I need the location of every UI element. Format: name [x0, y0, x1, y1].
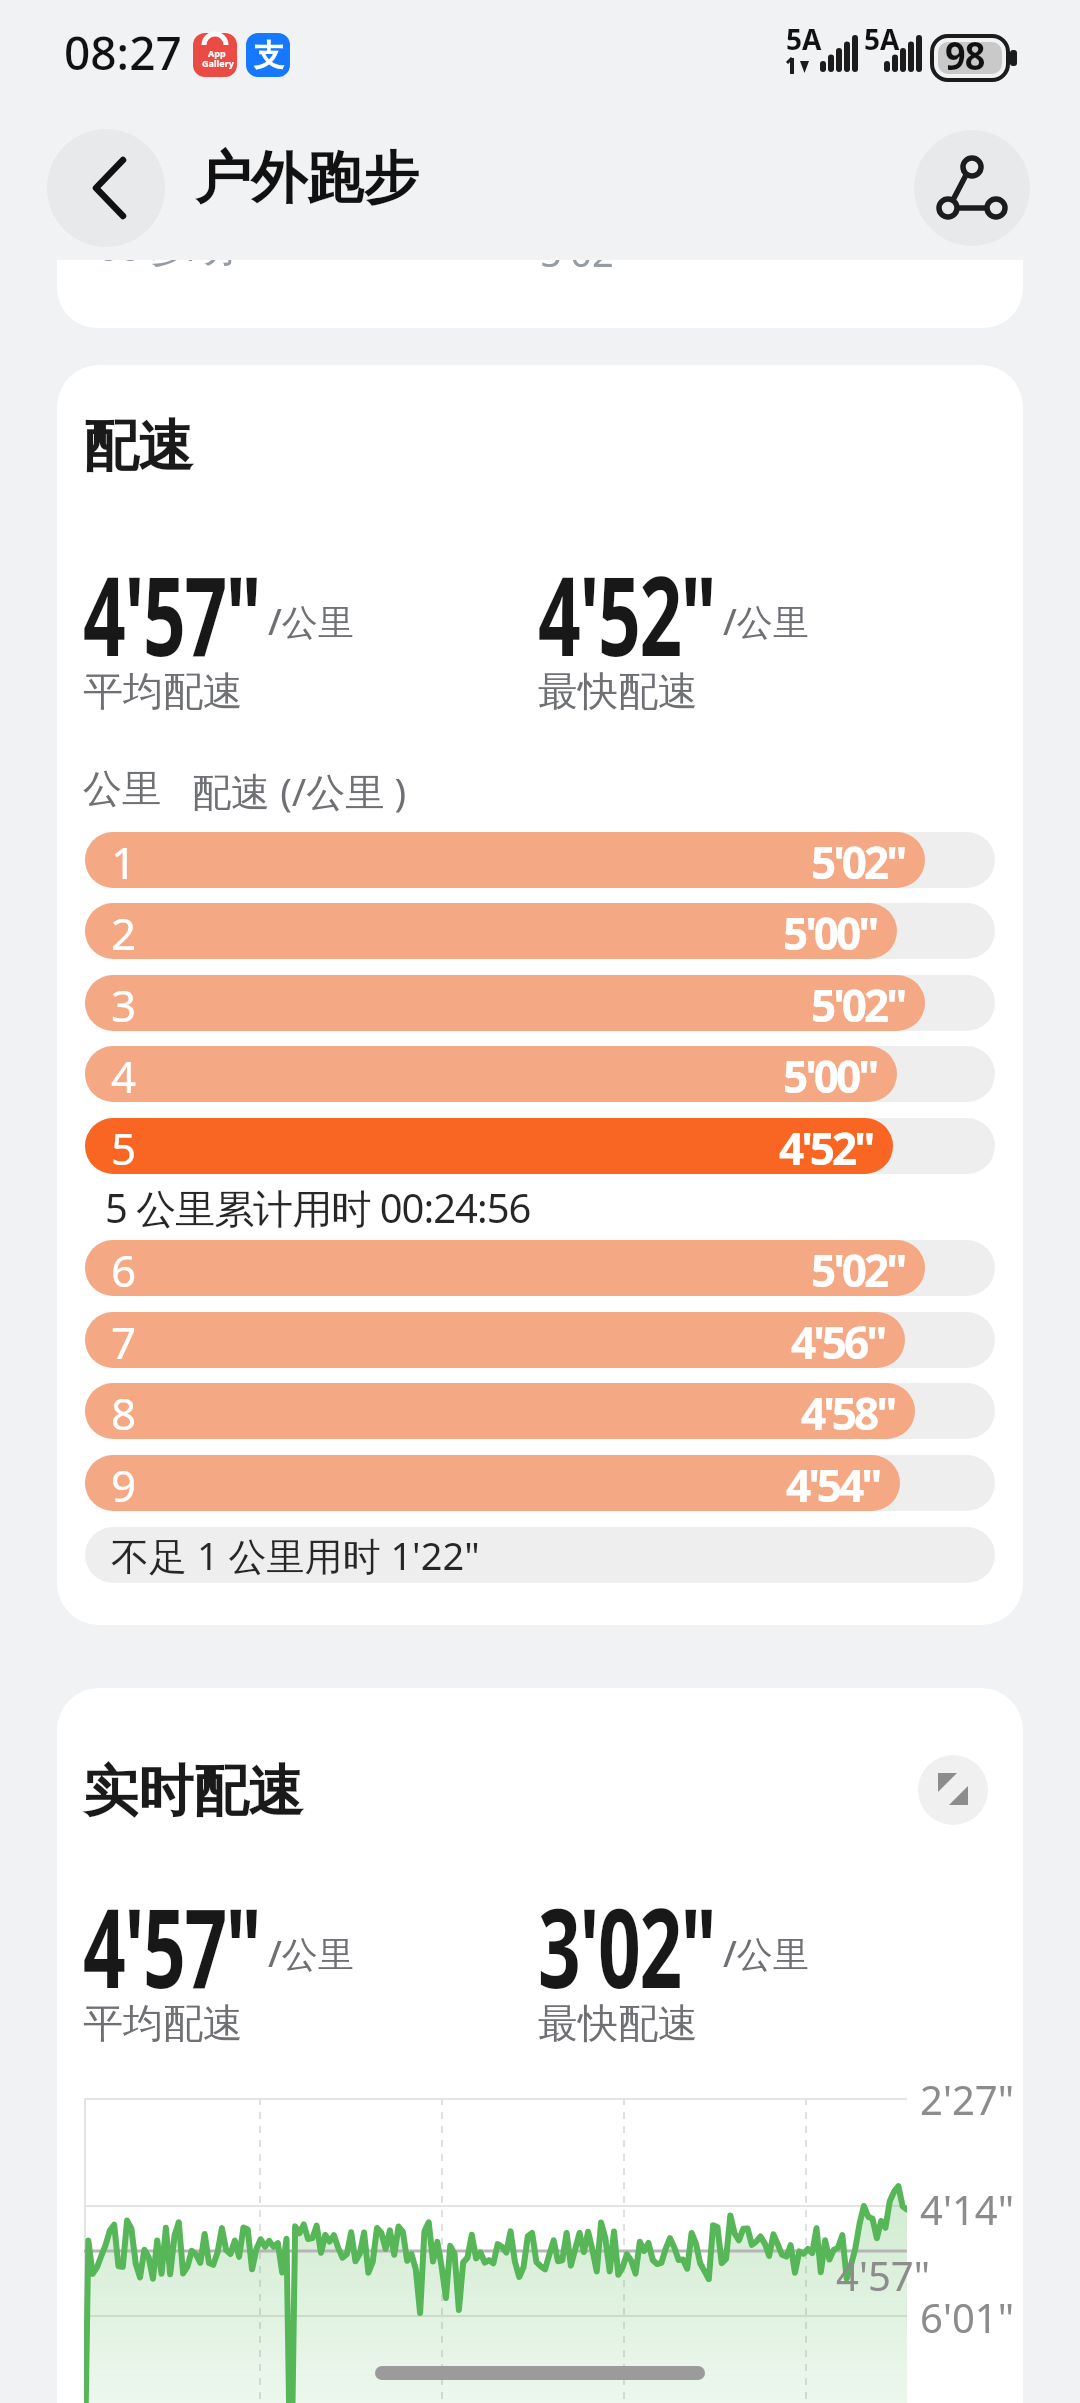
staticText: /公里 [268, 1929, 354, 1978]
staticText: 66 步/分 [97, 260, 241, 272]
staticText: 5'02" [811, 1240, 905, 1296]
staticText: 最快配速 [538, 666, 698, 716]
staticText: 4'52" [538, 538, 715, 688]
staticText: 4'52" [779, 1118, 873, 1174]
staticText: /公里 [268, 597, 354, 646]
staticText: Gallery [202, 57, 234, 69]
staticText: 配速 (/公里 ) [192, 764, 407, 817]
staticText: 4'57" [83, 538, 260, 688]
staticText: /公里 [723, 1929, 809, 1978]
staticText: 5'02" [811, 975, 905, 1031]
staticText: 不足 1 公里用时 1'22" [111, 1529, 480, 1581]
staticText: 配速 [83, 412, 193, 481]
staticText: 1 [111, 832, 137, 888]
staticText: /公里 [723, 597, 809, 646]
staticText: 4'14" [920, 2182, 1014, 2236]
staticText: 5'02" [811, 832, 905, 888]
staticText: 2'27" [920, 2072, 1014, 2126]
staticText: 4'54" [786, 1455, 880, 1511]
staticText: 7 [111, 1312, 137, 1368]
staticText: 4'56" [791, 1312, 885, 1368]
button[interactable] [47, 129, 165, 247]
staticText: 平均配速 [83, 666, 243, 716]
staticText: 4'57" [836, 2248, 930, 2302]
staticText: 9 [111, 1455, 137, 1511]
staticText: 4'57" [83, 1870, 260, 2020]
button[interactable] [914, 130, 1030, 246]
staticText: 实时配速 [83, 1757, 303, 1826]
staticText: 4 [111, 1046, 137, 1102]
staticText: 5 [111, 1118, 137, 1174]
staticText: App [208, 47, 226, 59]
staticText: 5A [864, 20, 900, 58]
staticText: 5 公里累计用时 00:24:56 [105, 1180, 531, 1235]
staticText: 公里 [83, 764, 161, 813]
staticText: 5A [786, 20, 822, 58]
staticText: 3 [111, 975, 137, 1031]
staticText: 5'00" [783, 1046, 877, 1102]
staticText: 最快配速 [538, 1998, 698, 2048]
staticText: 4'58" [801, 1383, 895, 1439]
staticText: 6 [111, 1240, 137, 1296]
staticText: 08:27 [64, 21, 182, 84]
staticText: 98 [945, 27, 985, 81]
staticText: 2 [111, 903, 137, 959]
staticText: 5'02" [540, 260, 630, 278]
staticText: 平均配速 [83, 1998, 243, 2048]
staticText: 6'01" [920, 2290, 1014, 2344]
staticText: 支 [254, 37, 284, 75]
staticText: 3'02" [538, 1870, 715, 2020]
staticText: 户外跑步 [195, 143, 419, 214]
button[interactable] [918, 1755, 988, 1825]
staticText: 5'00" [783, 903, 877, 959]
staticText: 8 [111, 1383, 137, 1439]
